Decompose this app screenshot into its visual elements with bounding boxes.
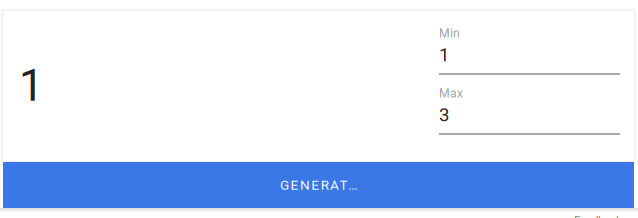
staticText: Min [439,26,460,40]
staticText: Feedback [574,214,622,218]
button[interactable]: Max [439,86,619,135]
button[interactable]: Min [439,26,619,75]
button[interactable]: Feedback [574,216,622,218]
staticText: GENERATE [280,177,357,193]
staticText: 1 [439,44,449,66]
staticText: 3 [439,104,449,126]
staticText: 1 [19,60,44,112]
staticText: Max [439,86,463,100]
button[interactable]: GENERATE [3,162,634,208]
